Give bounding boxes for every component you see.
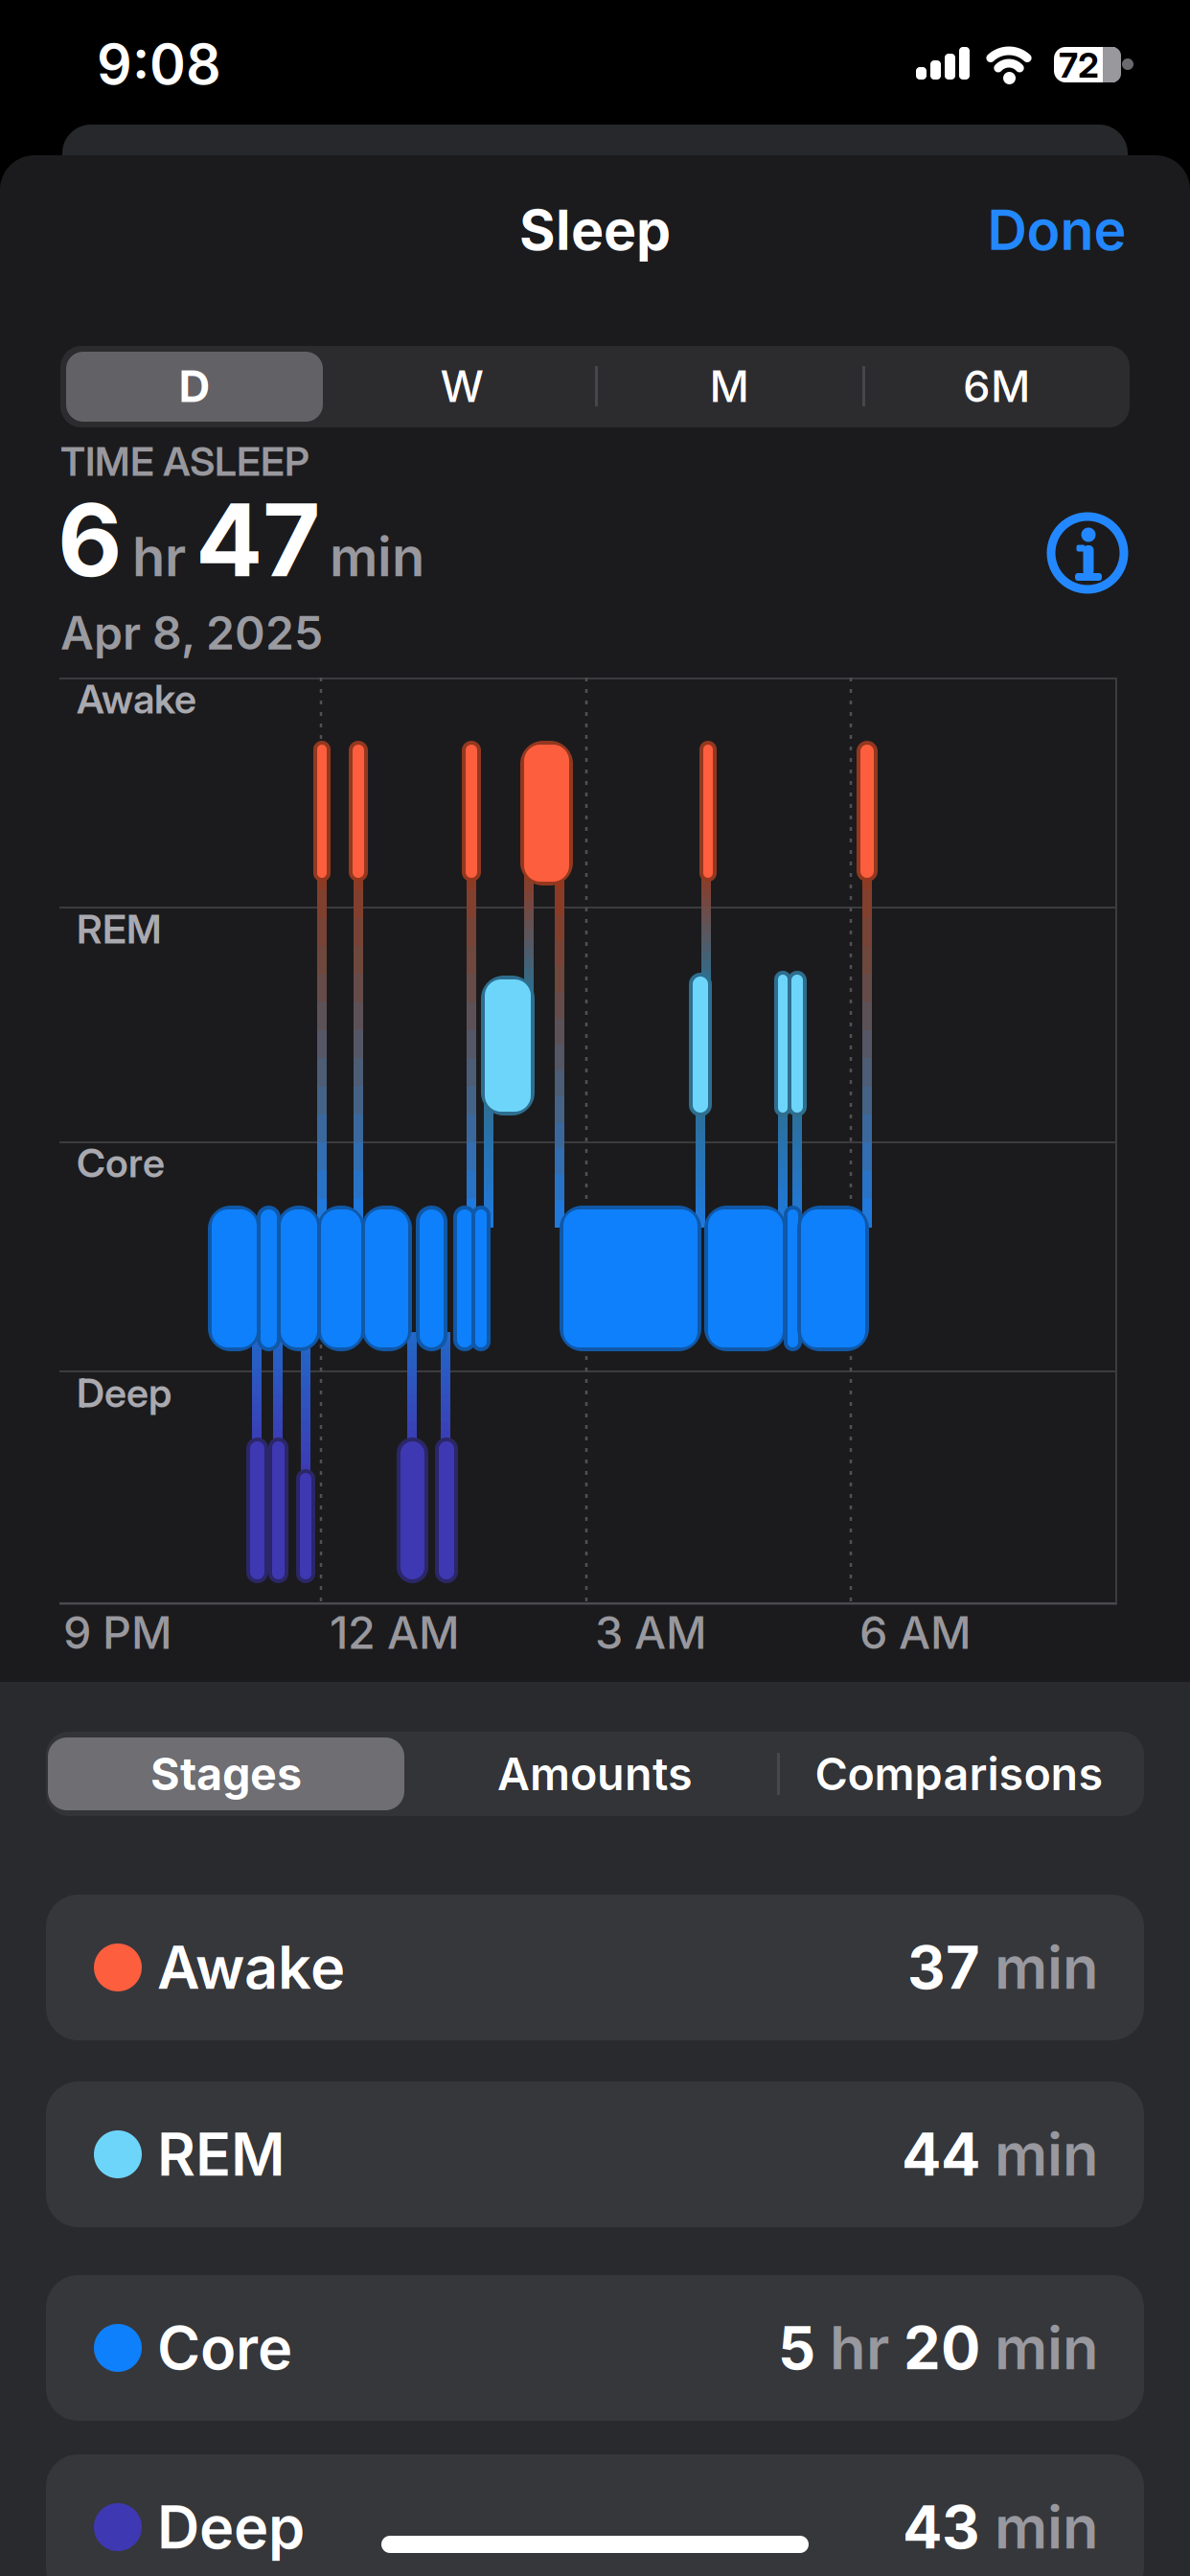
staticText: Done bbox=[987, 198, 1126, 262]
staticText: 44 bbox=[902, 2120, 980, 2189]
staticText: 12 AM bbox=[330, 1606, 460, 1659]
staticText: Awake bbox=[77, 676, 196, 722]
staticText: W bbox=[440, 361, 483, 412]
button[interactable]: Stages bbox=[45, 1732, 407, 1816]
staticText: Core bbox=[77, 1139, 165, 1186]
staticText: 72 bbox=[1059, 45, 1099, 86]
button[interactable]: 6M bbox=[867, 345, 1126, 427]
button[interactable] bbox=[1040, 505, 1135, 601]
staticText: Stages bbox=[150, 1748, 302, 1800]
staticText: 6 AM bbox=[859, 1606, 972, 1659]
staticText: REM bbox=[157, 2120, 286, 2189]
staticText: min bbox=[330, 525, 424, 588]
staticText: 47 bbox=[195, 481, 320, 599]
staticText: 43 bbox=[903, 2492, 980, 2562]
staticText: REM bbox=[77, 906, 162, 952]
staticText: min bbox=[980, 1933, 1099, 2002]
button[interactable]: Comparisons bbox=[778, 1732, 1140, 1816]
staticText: Deep bbox=[77, 1369, 172, 1416]
staticText: 3 AM bbox=[595, 1606, 707, 1659]
button[interactable]: Done bbox=[951, 187, 1162, 273]
staticText: hr bbox=[132, 525, 186, 588]
staticText: M bbox=[709, 361, 749, 412]
staticText: min bbox=[980, 2120, 1099, 2189]
staticText: Amounts bbox=[497, 1748, 693, 1800]
staticText: 6 bbox=[57, 481, 123, 599]
staticText: Awake bbox=[157, 1933, 345, 2002]
staticText: Core bbox=[157, 2313, 292, 2383]
staticText: 20 bbox=[904, 2313, 980, 2383]
button[interactable]: W bbox=[332, 345, 591, 427]
button[interactable]: D bbox=[65, 345, 324, 427]
staticText: Comparisons bbox=[815, 1748, 1103, 1800]
button[interactable]: Amounts bbox=[414, 1732, 776, 1816]
staticText: 5 bbox=[778, 2313, 815, 2383]
staticText: D bbox=[179, 361, 210, 412]
staticText: Sleep bbox=[519, 198, 671, 262]
staticText: 9:08 bbox=[97, 32, 221, 97]
staticText: min bbox=[980, 2313, 1099, 2383]
staticText: 6M bbox=[963, 361, 1030, 412]
staticText: 9 PM bbox=[63, 1606, 172, 1659]
staticText: hr bbox=[815, 2313, 904, 2383]
staticText: Apr 8, 2025 bbox=[60, 606, 323, 660]
staticText: min bbox=[980, 2492, 1099, 2562]
staticText: 37 bbox=[907, 1933, 980, 2002]
button[interactable]: M bbox=[600, 345, 858, 427]
staticText: TIME ASLEEP bbox=[60, 438, 309, 485]
staticText: Deep bbox=[157, 2492, 305, 2562]
